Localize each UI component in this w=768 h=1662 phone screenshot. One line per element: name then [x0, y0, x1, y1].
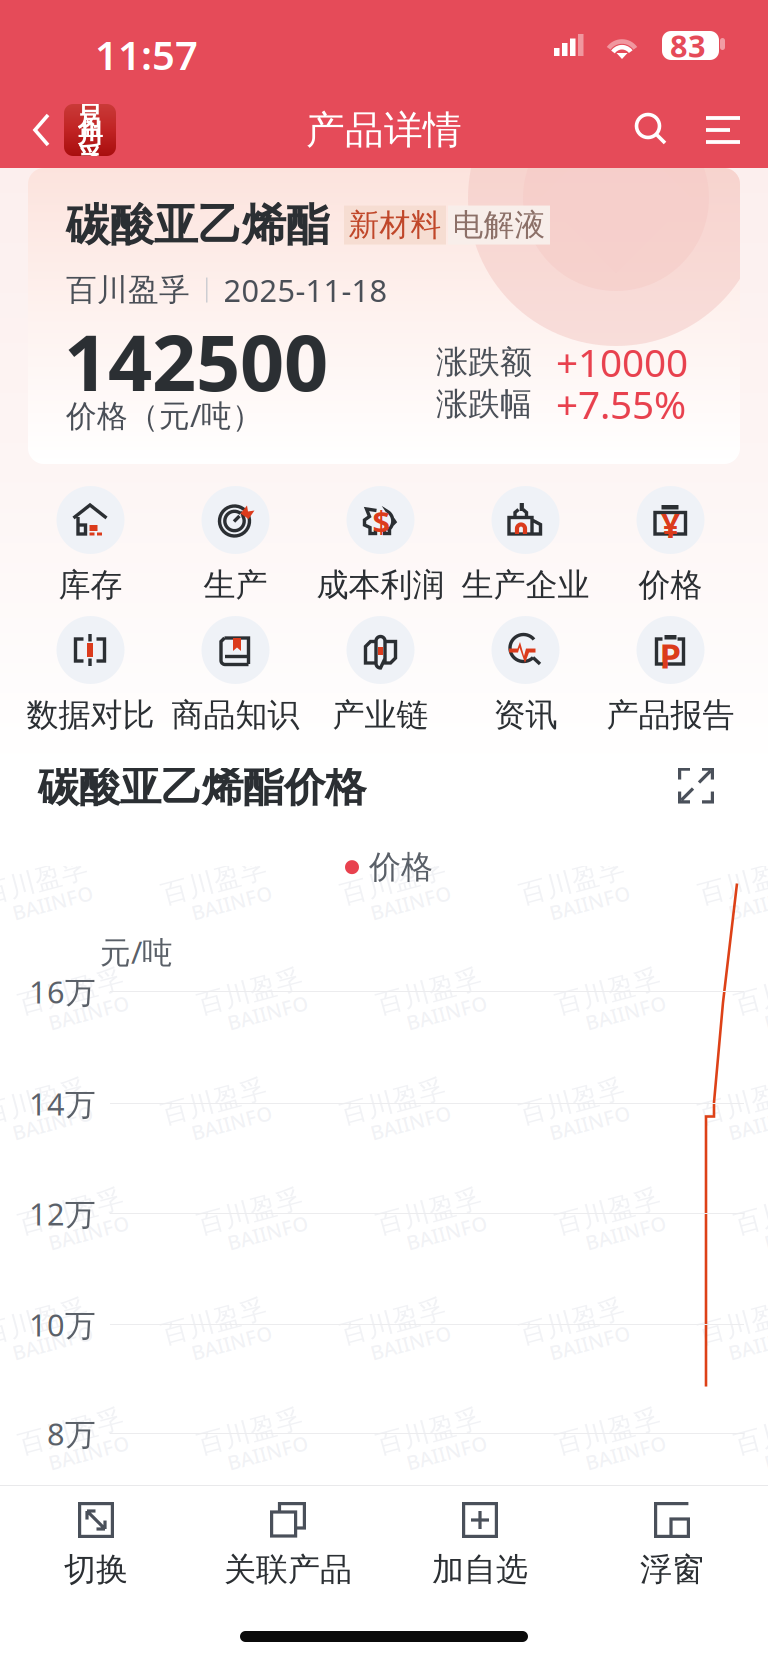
- button[interactable]: 资讯: [453, 616, 598, 732]
- staticText: P: [659, 632, 681, 678]
- staticText: 碳酸亚乙烯酯价格: [38, 761, 366, 812]
- button[interactable]: Search: [618, 92, 684, 168]
- button[interactable]: Back: [0, 92, 130, 168]
- staticText: BAIINFO: [724, 1332, 768, 1359]
- staticText: BAIINFO: [545, 892, 628, 919]
- button[interactable]: Fullscreen: [678, 767, 714, 803]
- staticText: BAIINFO: [223, 1222, 306, 1249]
- staticText: BAIINFO: [187, 892, 270, 919]
- staticText: 百川盈孚: [199, 1414, 307, 1447]
- staticText: BAIINFO: [724, 892, 768, 919]
- staticText: 百川盈孚: [700, 1084, 768, 1117]
- staticText: 百川盈孚: [378, 1194, 486, 1227]
- staticText: 产品报告: [606, 695, 734, 735]
- staticText: 14万: [29, 1083, 96, 1124]
- staticText: 百川盈孚: [736, 1414, 768, 1447]
- staticText: BAIINFO: [44, 1442, 127, 1469]
- staticText: 价格（元/吨）: [66, 395, 263, 435]
- staticText: 数据对比: [26, 695, 154, 735]
- staticText: BAIINFO: [8, 892, 91, 919]
- staticText: 11:57: [95, 28, 198, 81]
- staticText: 百川盈孚: [521, 1304, 629, 1337]
- staticText: 百川盈孚: [378, 974, 486, 1007]
- staticText: ¥: [661, 503, 680, 547]
- staticText: BAIINFO: [581, 1222, 664, 1249]
- staticText: 百川盈孚: [163, 864, 271, 897]
- staticText: 百川盈孚: [66, 271, 190, 309]
- staticText: BAIINFO: [760, 1442, 768, 1469]
- staticText: BAIINFO: [187, 1332, 270, 1359]
- button[interactable]: 商品知识: [163, 616, 308, 732]
- staticText: 百川盈孚: [20, 1414, 128, 1447]
- staticText: 百川盈孚: [342, 1304, 450, 1337]
- button[interactable]: 生产企业: [453, 486, 598, 602]
- staticText: 电解液: [452, 206, 545, 244]
- staticText: BAIINFO: [8, 1332, 91, 1359]
- staticText: BAIINFO: [223, 1002, 306, 1029]
- staticText: 碳酸亚乙烯酯: [66, 198, 330, 252]
- button[interactable]: 库存: [18, 486, 163, 602]
- button[interactable]: $: [308, 486, 453, 602]
- button[interactable]: Menu: [684, 92, 768, 168]
- staticText: 切换: [64, 1550, 128, 1589]
- staticText: 生产: [203, 565, 267, 605]
- staticText: BAIINFO: [366, 892, 449, 919]
- staticText: BAIINFO: [581, 1442, 664, 1469]
- staticText: BAIINFO: [44, 1222, 127, 1249]
- staticText: BAIINFO: [223, 1442, 306, 1469]
- staticText: BAIINFO: [760, 1002, 768, 1029]
- staticText: 百川盈孚: [20, 1194, 128, 1227]
- staticText: 16万: [29, 971, 96, 1012]
- staticText: 关联产品: [224, 1550, 352, 1589]
- staticText: 百川盈孚: [0, 1084, 92, 1117]
- staticText: 百川盈孚: [163, 1304, 271, 1337]
- staticText: BAIINFO: [581, 1002, 664, 1029]
- staticText: 百川盈孚: [557, 974, 665, 1007]
- staticText: 涨跌额: [436, 342, 532, 382]
- staticText: 百川盈孚: [20, 974, 128, 1007]
- staticText: 百川盈孚: [700, 864, 768, 897]
- staticText: 百川盈孚: [521, 1084, 629, 1117]
- staticText: 新材料: [348, 206, 441, 244]
- staticText: 加自选: [432, 1550, 528, 1589]
- staticText: 百川盈孚: [700, 1304, 768, 1337]
- staticText: 百川: [77, 87, 102, 150]
- button[interactable]: 浮窗: [576, 1486, 768, 1603]
- staticText: 百川盈孚: [736, 1194, 768, 1227]
- staticText: 百川盈孚: [163, 1084, 271, 1117]
- staticText: 生产企业: [461, 565, 589, 605]
- staticText: BAIINFO: [402, 1442, 485, 1469]
- staticText: BAIINFO: [760, 1222, 768, 1249]
- button[interactable]: 关联产品: [192, 1486, 384, 1603]
- staticText: BAIINFO: [545, 1332, 628, 1359]
- button[interactable]: P: [598, 616, 743, 732]
- staticText: 百川盈孚: [557, 1194, 665, 1227]
- staticText: BAIINFO: [402, 1002, 485, 1029]
- staticText: 12万: [29, 1193, 96, 1234]
- staticText: BAIINFO: [44, 1002, 127, 1029]
- button[interactable]: ¥: [598, 486, 743, 602]
- staticText: 价格: [638, 565, 702, 605]
- staticText: BAIINFO: [545, 1112, 628, 1139]
- staticText: BAIINFO: [366, 1112, 449, 1139]
- button[interactable]: 切换: [0, 1486, 192, 1603]
- button[interactable]: 数据对比: [18, 616, 163, 732]
- staticText: 库存: [58, 565, 122, 605]
- staticText: $: [372, 501, 390, 541]
- button[interactable]: 产业链: [308, 616, 453, 732]
- staticText: 成本利润: [316, 565, 444, 605]
- staticText: +10000: [556, 336, 688, 388]
- button[interactable]: 加自选: [384, 1486, 576, 1603]
- staticText: 浮窗: [640, 1550, 704, 1589]
- staticText: BAIINFO: [402, 1222, 485, 1249]
- staticText: 142500: [64, 310, 328, 412]
- staticText: 百川盈孚: [199, 1194, 307, 1227]
- staticText: 产品详情: [306, 106, 462, 154]
- staticText: 百川盈孚: [557, 1414, 665, 1447]
- staticText: 百川盈孚: [0, 864, 92, 897]
- staticText: 2025-11-18: [223, 270, 387, 310]
- staticText: 百川盈孚: [199, 974, 307, 1007]
- button[interactable]: 生产: [163, 486, 308, 602]
- staticText: 商品知识: [171, 695, 299, 735]
- staticText: 百川盈孚: [378, 1414, 486, 1447]
